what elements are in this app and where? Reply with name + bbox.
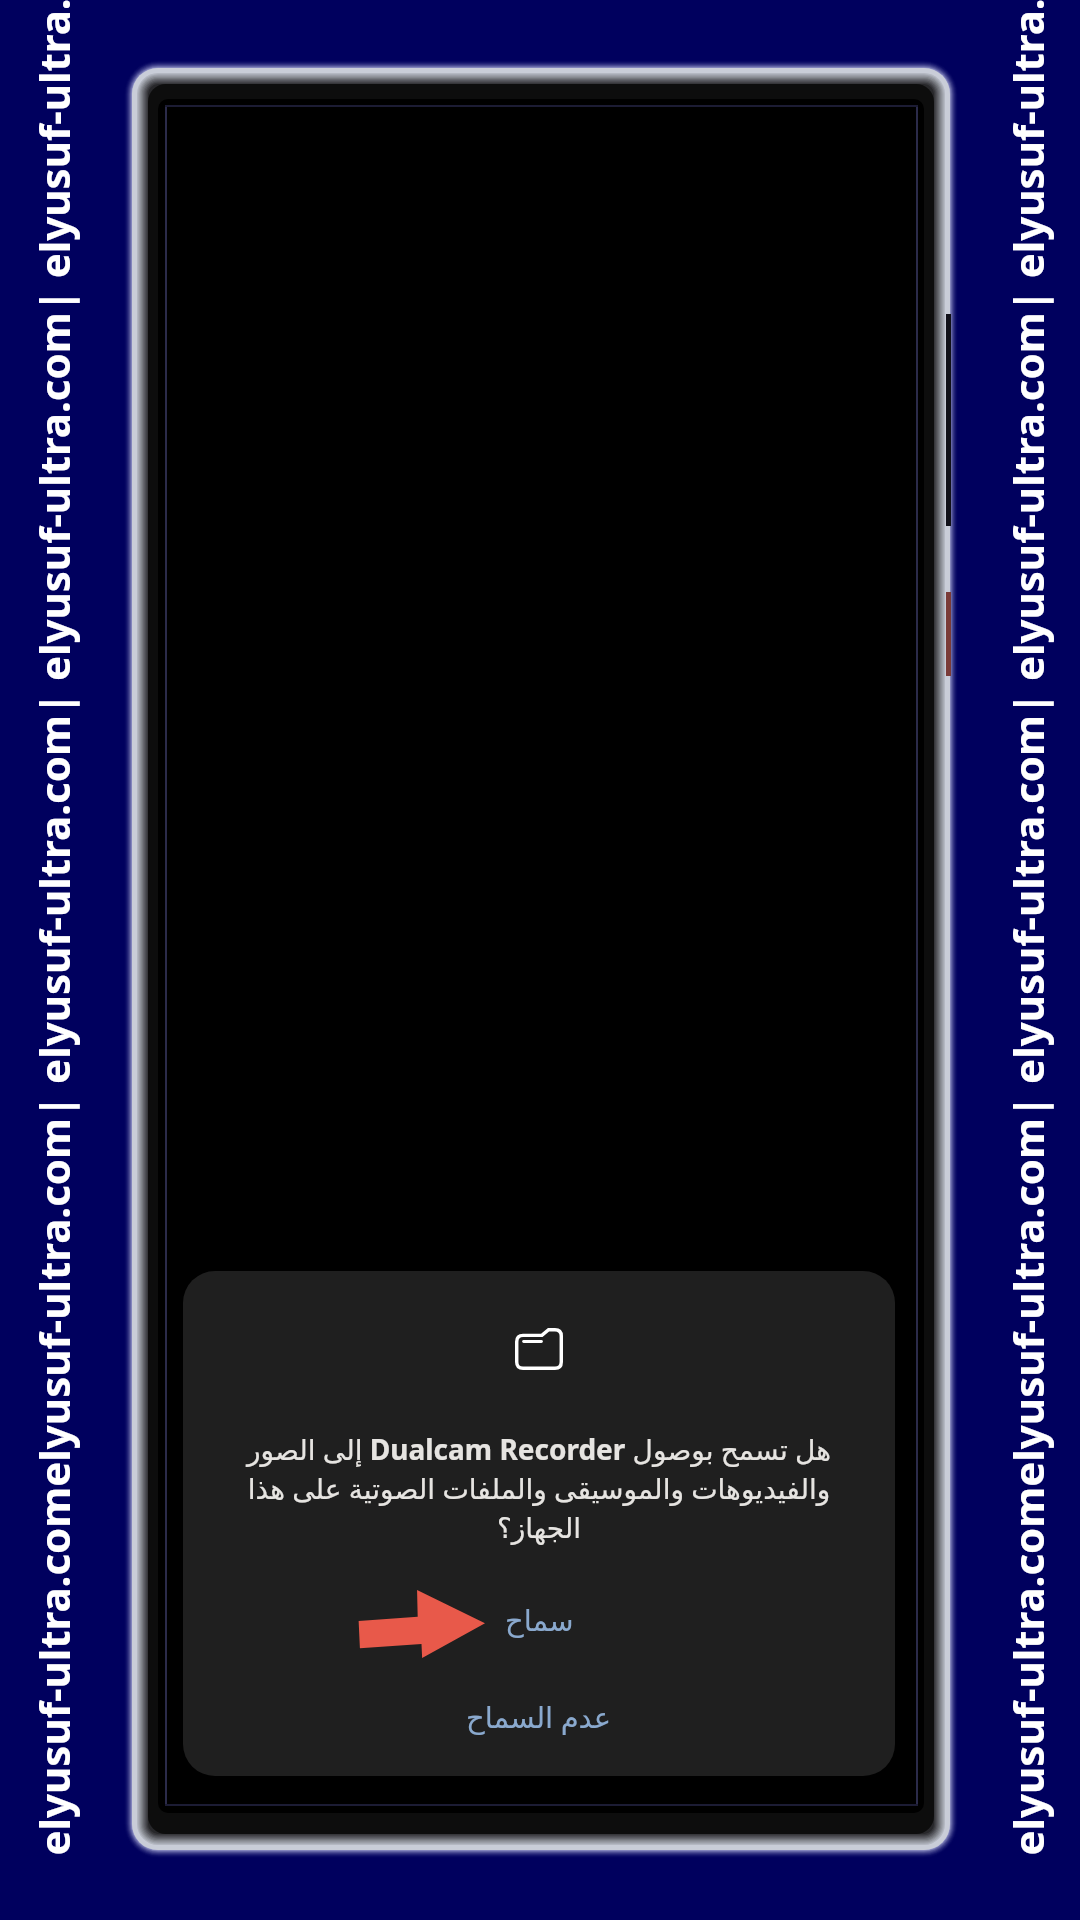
staticText: عدم السماح [466,1697,612,1736]
button[interactable]: عدم السماح [183,1678,895,1754]
staticText: هل تسمح بوصول Dualcam Recorder إلى الصور… [224,1430,854,1545]
other: Files and media [515,1328,563,1370]
staticText: سماح [505,1604,574,1638]
staticText: elyusuf-ultra.comelyusuf-ultra.com| elyu… [25,0,82,1882]
button[interactable]: سماح [183,1583,895,1659]
staticText: elyusuf-ultra.comelyusuf-ultra.com| elyu… [999,0,1056,1882]
